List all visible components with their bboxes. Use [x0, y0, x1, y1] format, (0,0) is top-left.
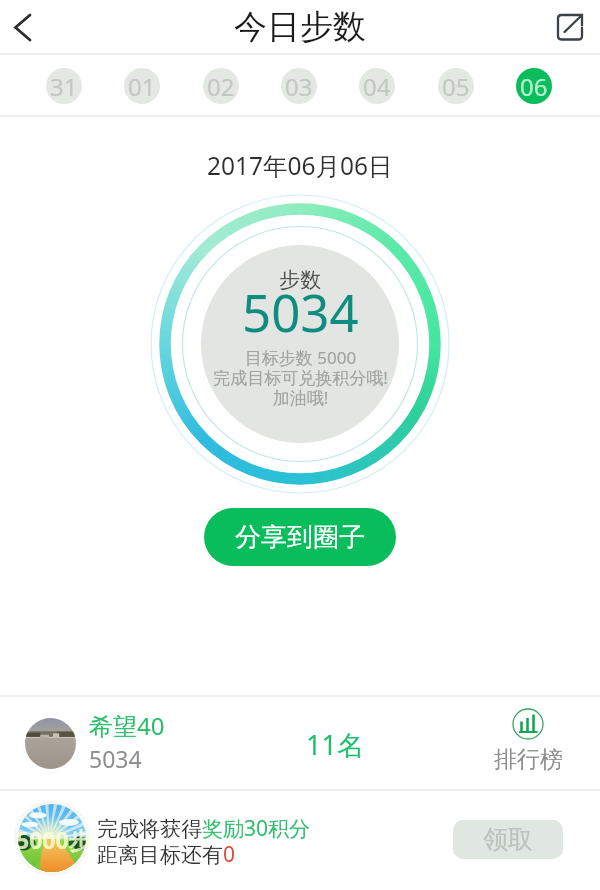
button[interactable]: 04 [359, 68, 395, 104]
staticText: 希望40 [89, 709, 165, 742]
button[interactable]: 希望40 [0, 697, 600, 789]
button[interactable]: 01 [124, 68, 160, 104]
staticText: 11名 [306, 726, 364, 763]
button[interactable]: Back [0, 0, 48, 55]
staticText: 02 [207, 70, 235, 103]
staticText: 排行榜 [494, 745, 563, 774]
staticText: 今日步数 [234, 6, 366, 48]
staticText: 分享到圈子 [235, 521, 365, 554]
staticText: 完成将获得奖励30积分 [97, 814, 311, 843]
staticText: 05 [442, 70, 470, 103]
staticText: 31 [50, 70, 78, 103]
button[interactable]: 领取 [453, 820, 563, 859]
staticText: 5000步 [16, 824, 92, 855]
button[interactable]: 31 [46, 68, 82, 104]
staticText: 03 [285, 70, 313, 103]
staticText: 06 [520, 70, 548, 103]
button[interactable]: 分享到圈子 [204, 508, 396, 566]
staticText: 5034 [89, 743, 142, 774]
button[interactable]: Share [548, 0, 600, 55]
staticText: 目标步数 5000 完成目标可兑换积分哦! 加油哦! [213, 346, 388, 409]
staticText: 步数 [279, 267, 321, 293]
button[interactable]: 05 [438, 68, 474, 104]
button[interactable]: 06 [516, 68, 552, 104]
staticText: 5034 [242, 277, 359, 346]
staticText: 01 [128, 70, 156, 103]
button[interactable]: 排行榜 [478, 708, 578, 774]
staticText: 2017年06月06日 [207, 149, 393, 182]
button[interactable]: 5000步 [0, 791, 600, 890]
staticText: 领取 [483, 824, 533, 855]
staticText: 04 [363, 70, 391, 103]
staticText: 距离目标还有0 [97, 840, 236, 869]
button[interactable]: 02 [203, 68, 239, 104]
button[interactable]: 03 [281, 68, 317, 104]
